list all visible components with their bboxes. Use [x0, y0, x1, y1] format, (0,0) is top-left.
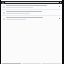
button[interactable]	[2, 17, 61, 20]
button[interactable]	[2, 11, 61, 14]
button[interactable]	[2, 5, 61, 8]
